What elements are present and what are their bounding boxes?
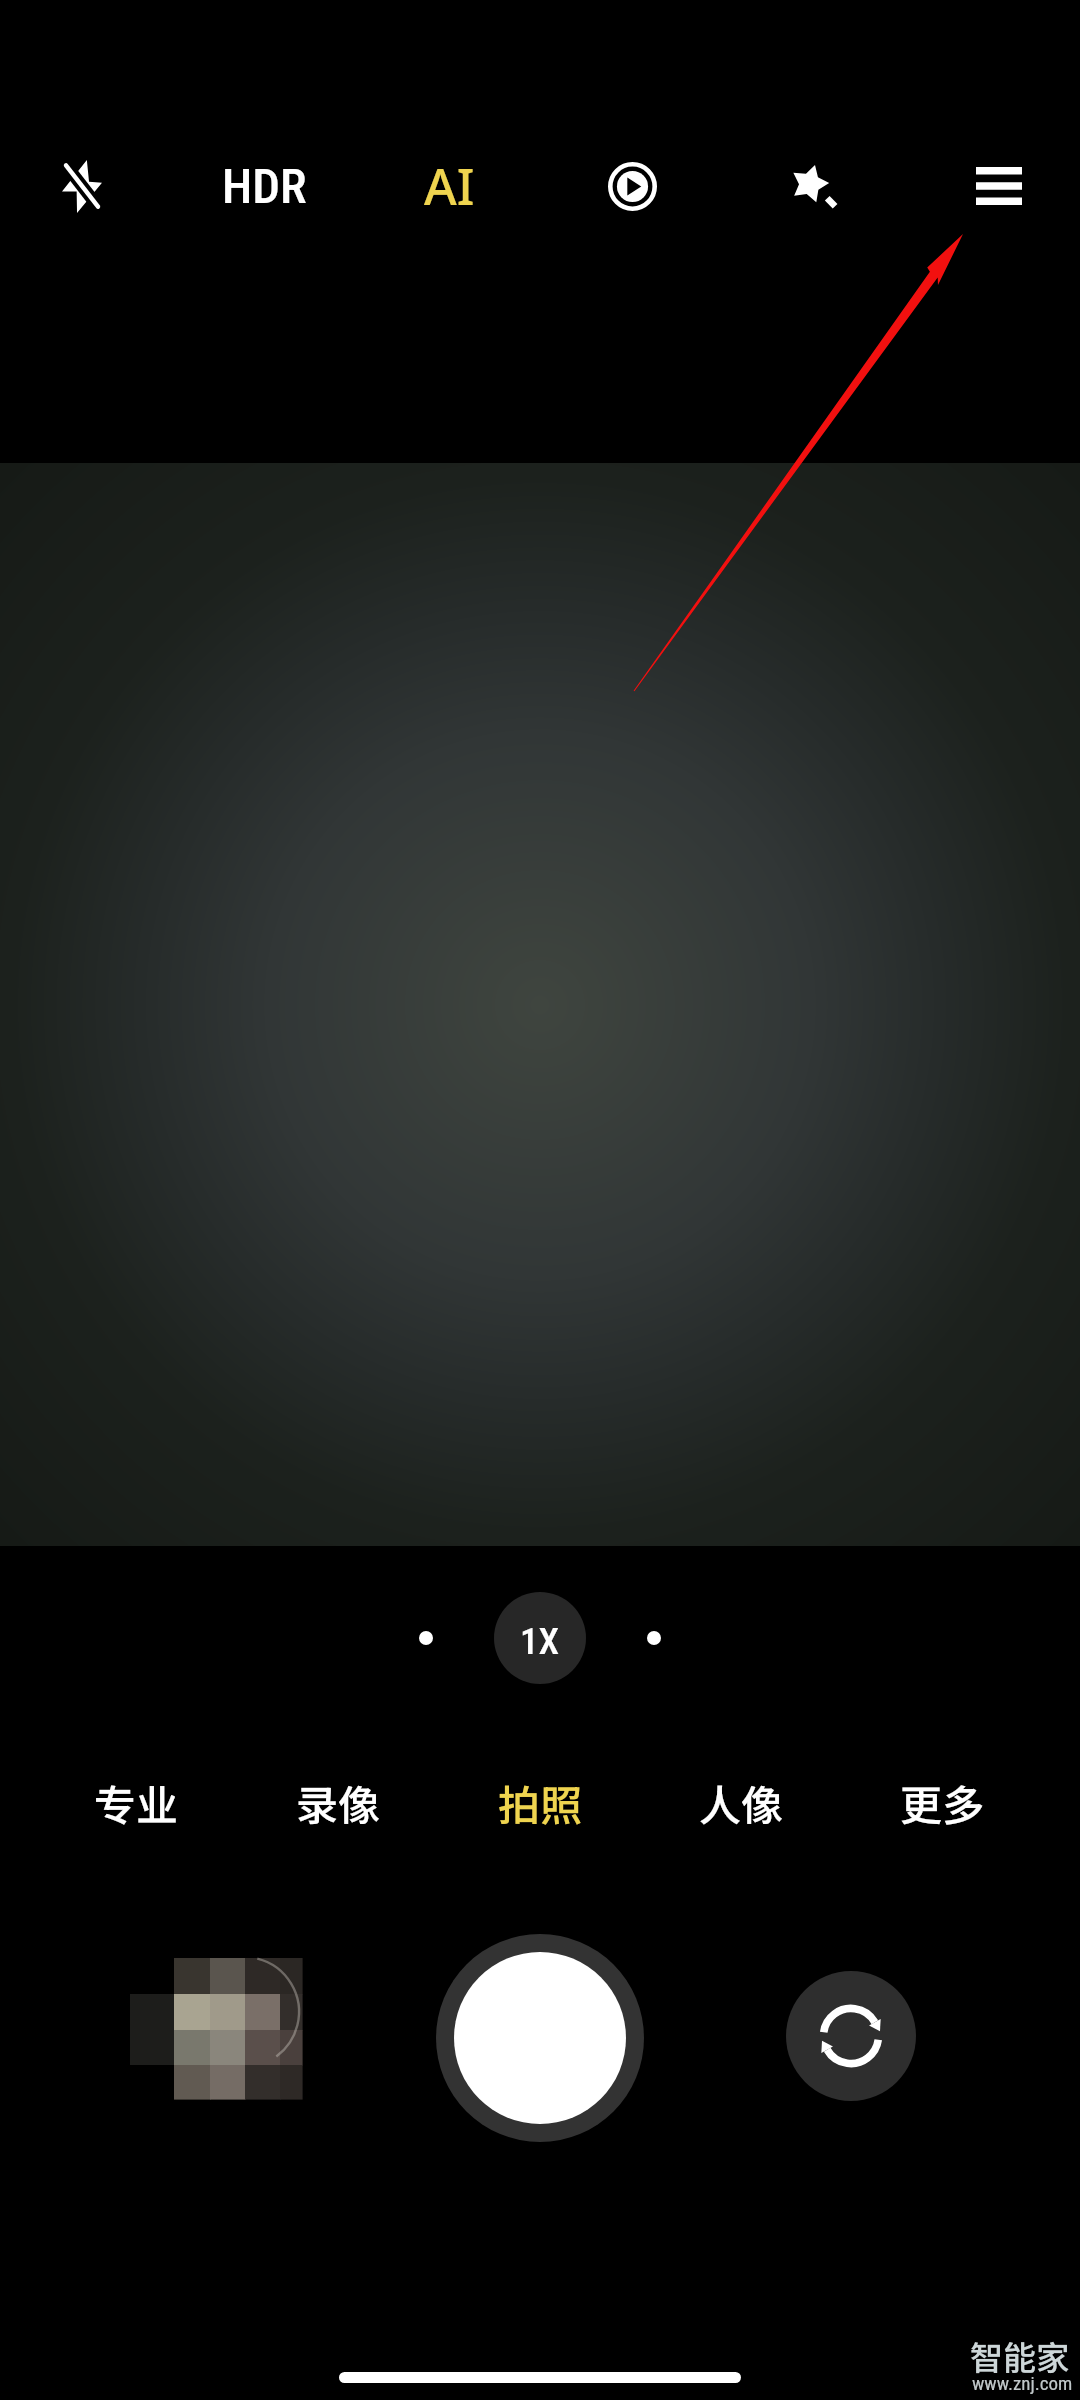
staticText: 更多 — [900, 1772, 985, 1833]
button[interactable]: Gallery — [130, 1940, 320, 2115]
staticText: 专业 — [94, 1772, 179, 1833]
button[interactable]: HDR — [194, 126, 334, 246]
staticText: AI — [424, 152, 475, 220]
button[interactable]: AI — [379, 126, 519, 246]
staticText: 1X — [520, 1620, 560, 1663]
button[interactable]: 拍照 — [450, 1752, 630, 1852]
staticText: www.znj.com — [972, 2372, 1073, 2394]
staticText: 智能家 — [970, 2332, 1069, 2380]
button[interactable]: 录像 — [248, 1752, 428, 1852]
button[interactable]: Menu — [939, 126, 1059, 246]
button[interactable]: Take photo — [436, 1934, 644, 2142]
button[interactable]: Motion photo — [572, 126, 692, 246]
button[interactable]: Zoom in — [647, 1631, 661, 1645]
button[interactable]: 更多 — [852, 1752, 1032, 1852]
button[interactable]: Zoom out — [419, 1631, 433, 1645]
button[interactable]: 专业 — [46, 1752, 226, 1852]
staticText: HDR — [222, 158, 307, 215]
button[interactable]: Switch camera — [786, 1971, 916, 2101]
staticText: 录像 — [296, 1772, 381, 1833]
button[interactable]: Beautify — [754, 126, 874, 246]
staticText: 拍照 — [498, 1772, 583, 1833]
button[interactable]: Flash off — [22, 126, 142, 246]
button[interactable]: 1X — [494, 1592, 586, 1684]
button[interactable]: 人像 — [651, 1752, 831, 1852]
staticText: 人像 — [699, 1772, 784, 1833]
